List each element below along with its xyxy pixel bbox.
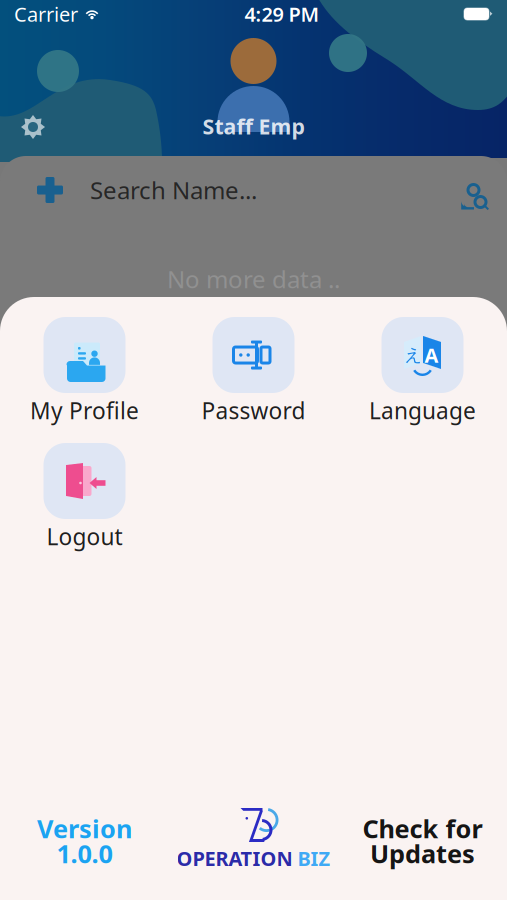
staticText: Updates [370, 837, 475, 870]
button[interactable]: My Profile [0, 317, 169, 428]
staticText: No more data .. [167, 263, 340, 295]
staticText: A [424, 342, 438, 368]
staticText: え [404, 344, 422, 366]
staticText: 1.0.0 [56, 837, 112, 870]
staticText: Password [201, 395, 305, 425]
staticText: Search Name... [90, 174, 257, 206]
staticText: BIZ [297, 845, 330, 872]
staticText: Staff Emp [202, 112, 304, 140]
button[interactable]: Search people [453, 174, 483, 206]
button[interactable]: Settings [12, 106, 54, 148]
staticText: OPERATION [176, 845, 292, 872]
staticText: Logout [46, 521, 122, 551]
staticText: Version [37, 812, 132, 845]
button[interactable]: Version [0, 816, 169, 874]
staticText: Check for [362, 812, 482, 845]
button[interactable]: Logout [0, 443, 169, 554]
button[interactable]: Add [31, 169, 69, 211]
button[interactable]: Password [169, 317, 338, 428]
button[interactable]: A [338, 317, 507, 428]
button[interactable]: Check for [338, 816, 507, 874]
staticText: Carrier [14, 1, 78, 27]
staticText: My Profile [30, 395, 139, 425]
staticText: 4:29 PM [244, 1, 319, 27]
staticText: Language [369, 395, 476, 425]
